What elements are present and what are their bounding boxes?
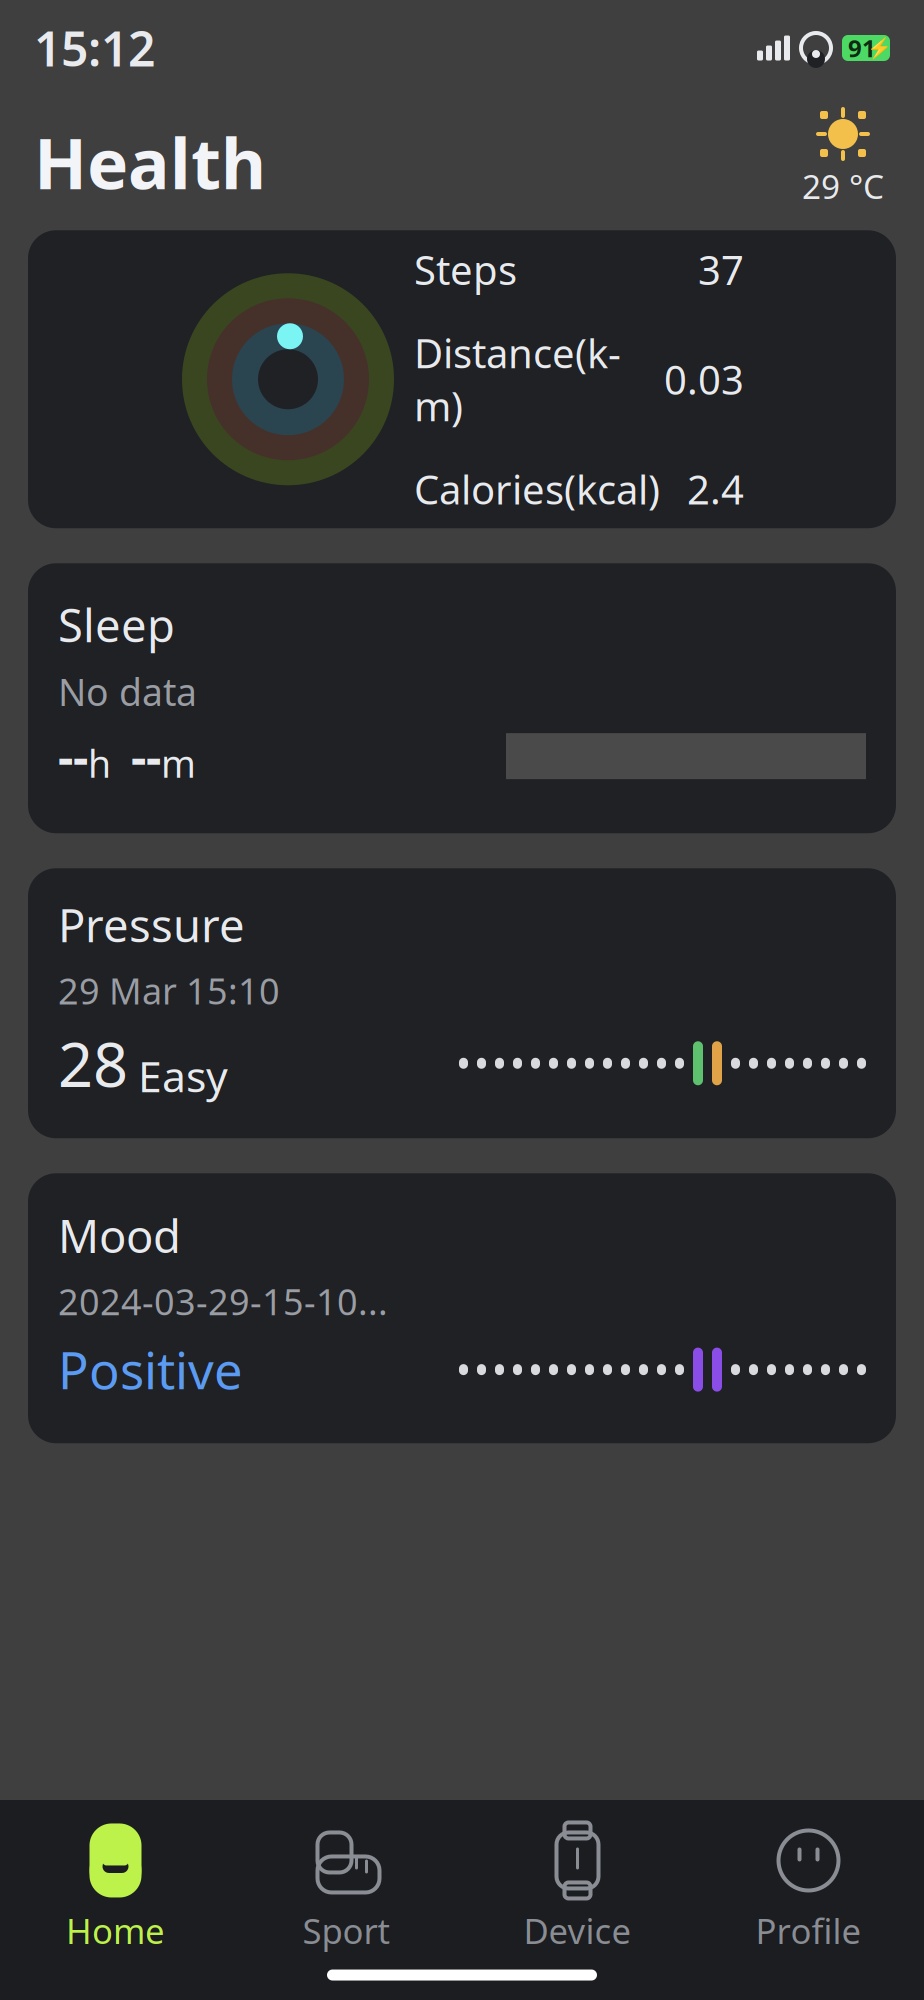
staticText: 91 [848,32,876,64]
staticText: 2024-03-29-15-10... [58,1277,388,1325]
staticText: Health [34,116,266,208]
staticText: Profile [755,1907,861,1953]
button[interactable]: Device [462,1813,693,1961]
staticText: Sport [302,1907,390,1953]
staticText: Device [523,1907,631,1953]
button[interactable]: Pressure [28,868,896,1138]
staticText: Pressure [58,894,245,955]
staticText: h [88,738,111,788]
button[interactable]: Weather, 29 degrees Celsius, sunny [796,106,890,208]
staticText: 37 [698,243,744,296]
staticText: -- [131,724,161,788]
staticText: 2.4 [687,462,744,515]
staticText: Home [66,1907,165,1953]
button[interactable]: Profile [693,1813,924,1961]
button[interactable]: Steps [28,230,896,528]
staticText: 0.03 [664,353,744,406]
staticText: ⚡ [866,37,891,59]
staticText: Steps [414,243,517,296]
button[interactable]: Sleep [28,563,896,833]
staticText: 29 °C [802,164,884,208]
staticText: Positive [58,1336,243,1403]
button[interactable]: Sport [231,1813,462,1961]
button[interactable]: Mood [28,1173,896,1443]
staticText: Distance(km) [414,326,621,432]
staticText: Mood [58,1205,181,1265]
button[interactable]: Home [0,1813,231,1961]
staticText: No data [58,667,197,716]
staticText: Sleep [58,594,175,655]
staticText: -- [58,724,88,788]
staticText: m [161,738,196,788]
staticText: Calories(kcal) [414,462,660,515]
staticText: 28 [58,1022,128,1104]
staticText: 15:12 [34,16,155,80]
staticText: Easy [138,1047,228,1104]
staticText: 29 Mar 15:10 [58,967,280,1014]
